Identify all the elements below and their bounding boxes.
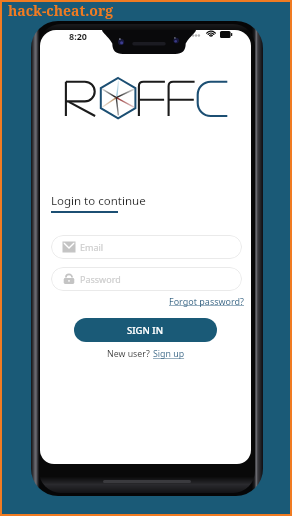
button[interactable]: Forgot password? <box>169 295 245 307</box>
staticText: New user? <box>107 348 153 360</box>
button[interactable]: Password <box>51 267 242 291</box>
button[interactable]: Sign up <box>153 348 185 360</box>
staticText: hack-cheat.org <box>8 1 114 20</box>
staticText: 8:20 <box>69 30 87 42</box>
staticText: Email <box>80 241 104 253</box>
button[interactable]: Email <box>51 235 242 259</box>
staticText: Password <box>80 273 121 285</box>
staticText: Login to continue <box>51 193 146 209</box>
button[interactable]: SIGN IN <box>74 318 217 342</box>
staticText: SIGN IN <box>127 324 164 337</box>
